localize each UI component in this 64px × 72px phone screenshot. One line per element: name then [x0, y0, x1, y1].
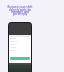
staticText: Request your shift directly with the man… [4, 5, 36, 16]
button[interactable] [10, 57, 30, 60]
